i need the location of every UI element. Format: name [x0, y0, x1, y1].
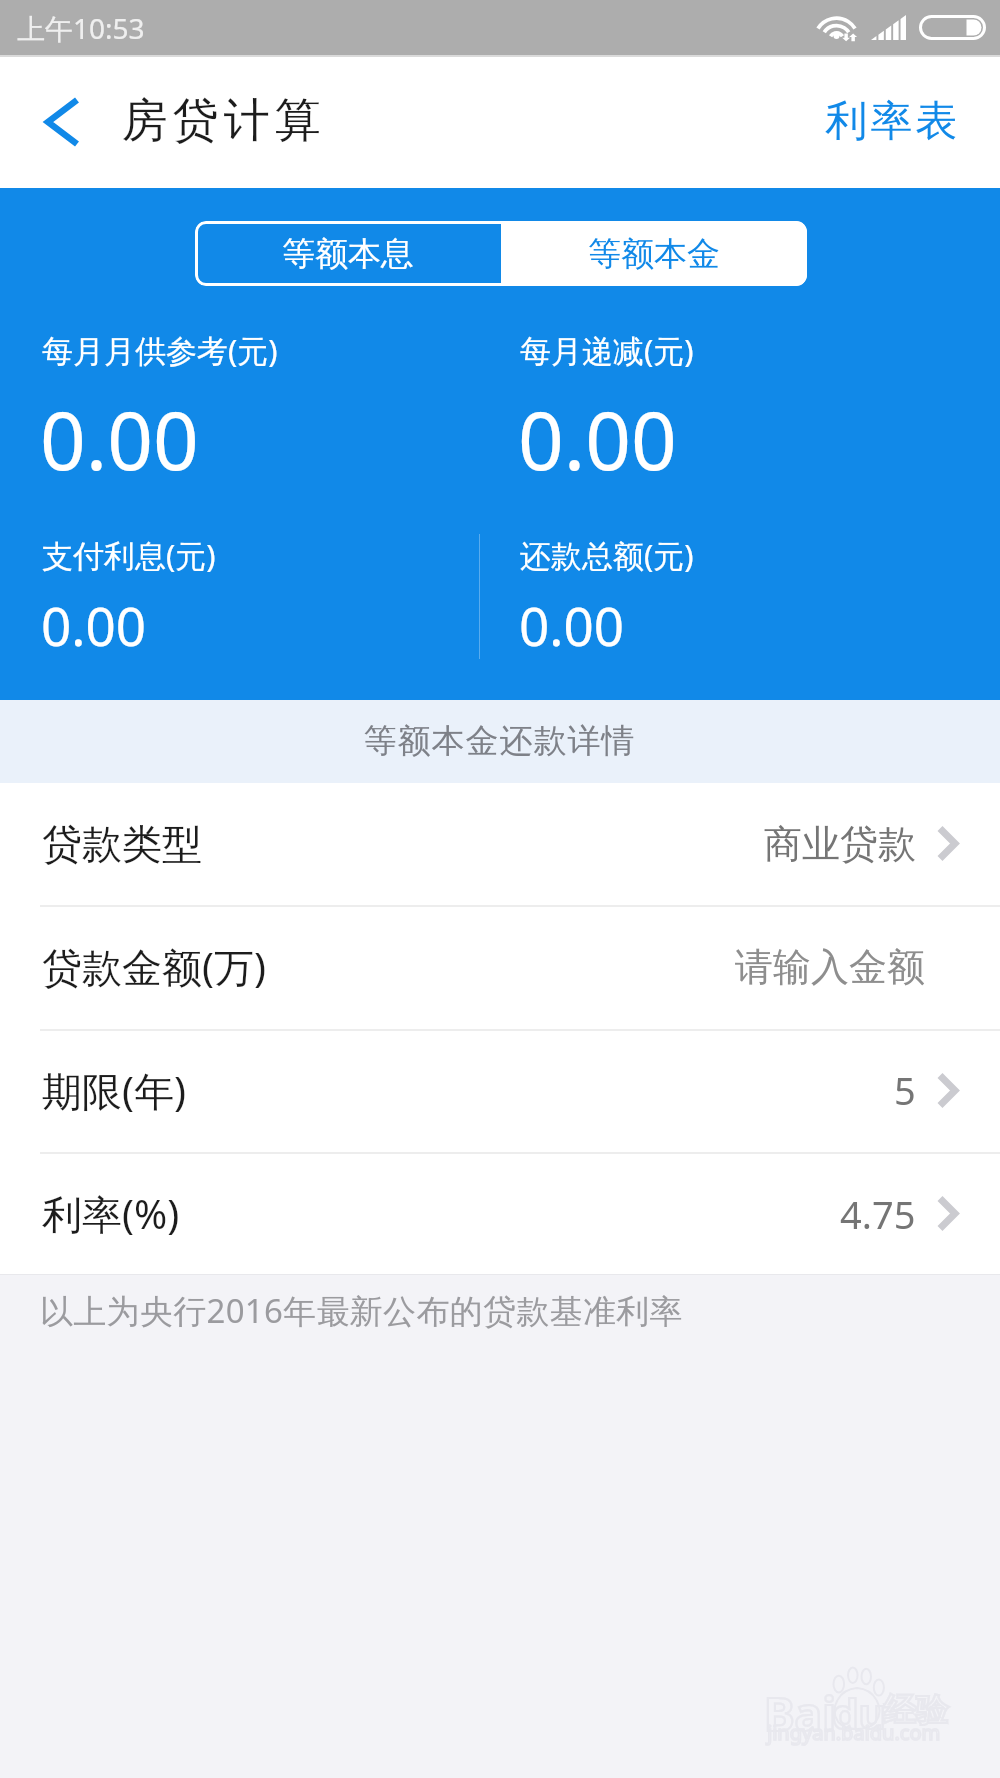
staticText: 每月递减(元): [520, 329, 694, 371]
staticText: Bai: [764, 1682, 836, 1745]
staticText: 请输入金额: [735, 943, 925, 991]
staticText: 以上为央行2016年最新公布的贷款基准利率: [40, 1288, 683, 1333]
button[interactable]: 返回: [0, 55, 116, 188]
staticText: 经验: [884, 1690, 948, 1730]
button[interactable]: 利率表: [790, 55, 1000, 188]
button[interactable]: 等额本息: [195, 221, 501, 286]
staticText: 0.00: [40, 384, 199, 493]
staticText: 0.00: [519, 589, 625, 661]
staticText: 利率(%): [42, 1186, 180, 1241]
staticText: 贷款金额(万): [42, 939, 266, 994]
staticText: 还款总额(元): [520, 534, 694, 576]
staticText: 利率表: [824, 95, 959, 148]
staticText: 上午10:53: [17, 9, 145, 47]
staticText: 每月月供参考(元): [42, 329, 278, 371]
staticText: 商业贷款: [764, 820, 916, 868]
button[interactable]: 利率(%): [0, 1152, 1000, 1275]
staticText: 等额本息: [282, 233, 414, 275]
button[interactable]: 等额本金: [501, 221, 807, 286]
staticText: 0.00: [41, 589, 147, 661]
staticText: 期限(年): [42, 1063, 186, 1118]
staticText: du: [832, 1684, 886, 1741]
staticText: 等额本金: [588, 233, 720, 275]
staticText: 房贷计算: [119, 92, 323, 150]
staticText: 贷款类型: [42, 819, 202, 869]
staticText: 0.00: [518, 384, 677, 493]
button[interactable]: 贷款金额(万): [0, 905, 1000, 1028]
staticText: 4.75: [840, 1188, 916, 1240]
staticText: 5: [894, 1064, 916, 1116]
staticText: jingyan.baidu.com: [767, 1719, 941, 1746]
staticText: 支付利息(元): [42, 534, 216, 576]
button[interactable]: 期限(年): [0, 1029, 1000, 1151]
button[interactable]: 贷款类型: [0, 783, 1000, 904]
staticText: 等额本金还款详情: [363, 720, 635, 762]
